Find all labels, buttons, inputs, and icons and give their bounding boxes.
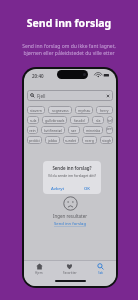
staticText: Hjem xyxy=(35,271,43,275)
button[interactable]: pertaa xyxy=(106,126,113,134)
button[interactable]: tel xyxy=(107,116,113,124)
button[interactable]: stogh xyxy=(100,136,113,144)
staticText: probbi xyxy=(29,138,40,143)
button[interactable]: Send inn forslag xyxy=(54,221,86,227)
staticText: Send inn forslag om du ikke fant lagnet,… xyxy=(8,43,130,57)
staticText: tel xyxy=(108,118,113,123)
staticText: Ingen resultater xyxy=(53,213,88,219)
staticText: sundet xyxy=(65,138,77,143)
staticText: myrhau xyxy=(78,108,91,113)
button[interactable]: sør xyxy=(68,126,80,134)
button[interactable]: jobba xyxy=(45,136,60,144)
button[interactable]: Favoritter xyxy=(54,263,85,275)
button[interactable]: sula xyxy=(27,116,39,124)
staticText: vein xyxy=(29,128,36,133)
button[interactable]: kvitfinnstøl xyxy=(41,126,65,134)
button[interactable]: probbi xyxy=(27,136,42,144)
staticText: Send inn forslag xyxy=(54,221,86,227)
staticText: sør xyxy=(71,128,77,133)
staticText: Avbryt xyxy=(51,186,65,192)
button[interactable]: sognevass xyxy=(48,106,72,114)
staticText: pertaa xyxy=(106,126,113,134)
staticText: 20:40 xyxy=(32,73,44,79)
staticText: sognevass xyxy=(52,108,69,113)
staticText: sula xyxy=(30,118,37,123)
button[interactable]: fasolid xyxy=(70,116,89,124)
staticText: OK xyxy=(84,186,90,192)
button[interactable]: vein xyxy=(27,126,38,134)
staticText: stavern xyxy=(30,108,42,113)
staticText: Favoritter xyxy=(63,271,77,275)
staticText: Vil du sende inn forslaget ditt? xyxy=(45,173,99,178)
staticText: Send inn forslag xyxy=(0,16,138,30)
staticText: stogh xyxy=(102,138,112,143)
staticText: sla xyxy=(96,118,101,123)
button[interactable]: herry xyxy=(96,106,113,114)
button[interactable]: Søk xyxy=(85,263,116,275)
button[interactable]: myrhau xyxy=(75,106,93,114)
staticText: gullvikroads xyxy=(45,118,65,123)
button[interactable]: stavern xyxy=(27,106,45,114)
staticText: mineiska xyxy=(86,128,101,133)
staticText: herry xyxy=(100,108,109,113)
button[interactable]: Fjell xyxy=(30,90,110,101)
button[interactable]: roerg xyxy=(82,136,97,144)
staticText: jobba xyxy=(48,138,57,143)
button[interactable]: gullvikroads xyxy=(42,116,67,124)
staticText: fasolid xyxy=(74,118,85,123)
staticText: roerg xyxy=(85,138,94,143)
button[interactable]: sla xyxy=(92,116,104,124)
button[interactable]: sundet xyxy=(63,136,79,144)
button[interactable]: Hjem xyxy=(24,263,54,275)
staticText: kvitfinnstøl xyxy=(44,128,62,133)
staticText: Fjell xyxy=(37,93,46,99)
staticText: Sende inn forslag? xyxy=(43,165,101,171)
staticText: Søk xyxy=(98,271,104,275)
button[interactable]: OK xyxy=(72,183,101,194)
button[interactable]: Avbryt xyxy=(43,183,72,194)
button[interactable]: mineiska xyxy=(83,126,103,134)
